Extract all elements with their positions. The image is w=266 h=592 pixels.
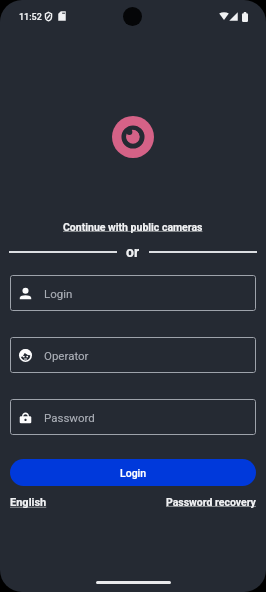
staticText: Continue with public cameras xyxy=(63,221,203,233)
button[interactable]: English xyxy=(10,496,47,509)
button[interactable]: Operator xyxy=(10,337,256,373)
staticText: Operator xyxy=(44,349,89,362)
staticText: Login xyxy=(44,287,73,300)
staticText: 11:52 xyxy=(19,12,42,23)
staticText: Password recovery xyxy=(166,496,256,508)
other: Login xyxy=(19,287,32,300)
staticText: or xyxy=(126,244,140,260)
button[interactable]: Continue with public cameras xyxy=(57,218,209,236)
staticText: Password xyxy=(44,411,95,424)
other: Operator xyxy=(19,349,32,362)
button[interactable]: Password xyxy=(10,399,256,435)
button[interactable]: Login xyxy=(10,275,256,311)
button[interactable]: Password recovery xyxy=(166,496,256,508)
staticText: English xyxy=(10,496,47,509)
other: Password xyxy=(19,411,32,424)
button[interactable]: Login xyxy=(10,459,256,486)
staticText: Login xyxy=(120,467,147,479)
